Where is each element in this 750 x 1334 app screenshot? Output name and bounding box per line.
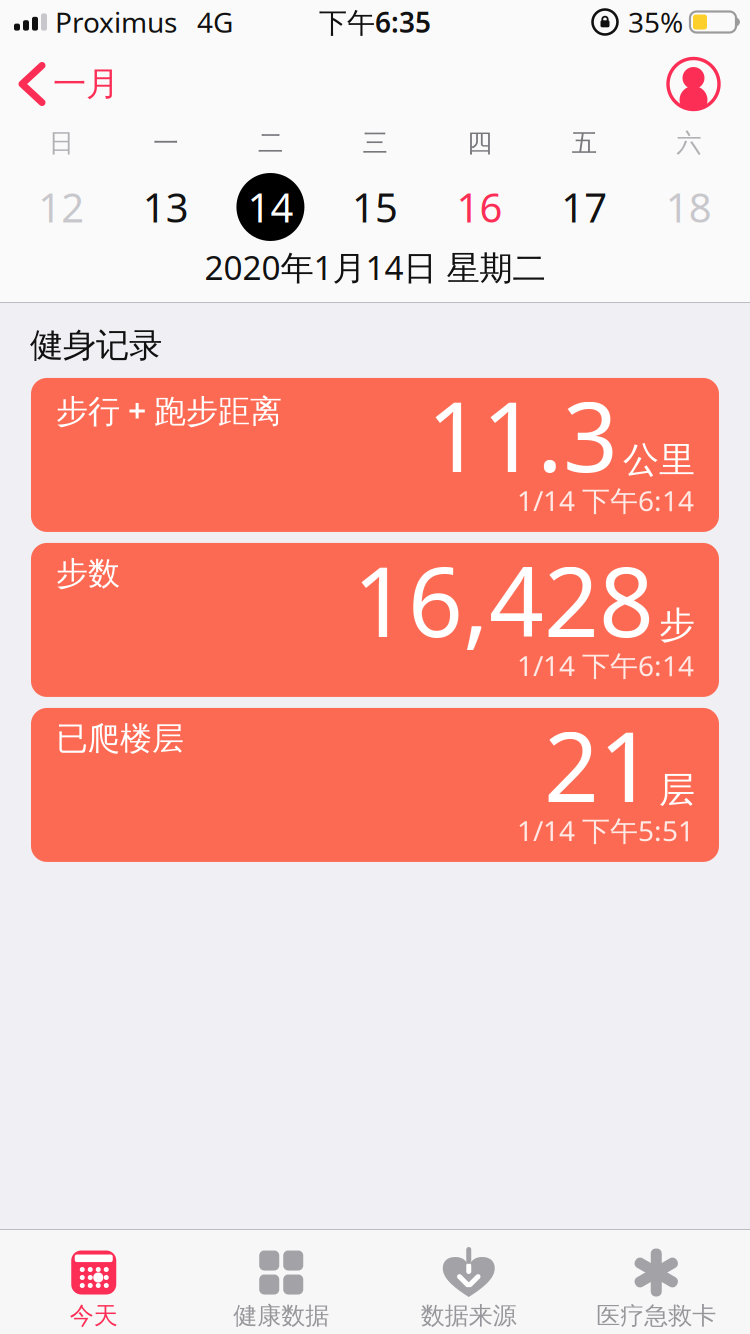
staticText: 14 [247,180,293,233]
staticText: 18 [666,180,712,233]
staticText: 35% [628,3,683,41]
staticText: Proximus [55,3,177,41]
staticText: 日 [49,127,74,158]
staticText: 1/14 下午6:14 [517,482,694,519]
button[interactable]: 18 [636,173,741,241]
button[interactable]: 步行 + 跑步距离 [31,378,719,532]
staticText: 步数 [56,554,120,593]
staticText: 三 [362,127,387,158]
staticText: 一 [153,127,178,158]
staticText: 16,428 [353,536,654,663]
staticText: 1/14 下午5:51 [517,812,694,849]
staticText: 今天 [70,1301,118,1330]
button[interactable]: 一月 [0,63,119,104]
staticText: 步行 + 跑步距离 [56,389,282,431]
staticText: 一月 [53,63,119,104]
button[interactable]: 健康数据 [187,1249,375,1330]
staticText: 2020年1月14日 星期二 [204,245,545,289]
staticText: 二 [258,127,283,158]
button[interactable]: 数据来源 [375,1249,562,1330]
staticText: 五 [572,127,597,158]
staticText: 健身记录 [30,325,162,366]
button[interactable]: 步数 [31,543,719,697]
button[interactable]: 已爬楼层 [31,708,719,862]
button[interactable]: 医疗急救卡 [562,1249,750,1330]
staticText: 层 [659,768,695,812]
staticText: 4G [197,3,233,41]
button[interactable]: 健康资料 [668,58,750,109]
staticText: 步 [659,603,695,647]
staticText: 下午6:35 [319,3,431,41]
button[interactable]: 14 [218,173,323,241]
staticText: 21 [544,701,654,828]
staticText: 医疗急救卡 [596,1301,716,1330]
staticText: 已爬楼层 [56,719,184,758]
staticText: 13 [143,180,189,233]
button[interactable]: 15 [323,173,427,241]
staticText: 12 [38,180,84,233]
staticText: 17 [561,180,607,233]
staticText: 11.3 [427,371,618,498]
staticText: 16 [457,180,503,233]
staticText: 数据来源 [421,1301,517,1330]
button[interactable]: 今天 [0,1249,187,1330]
staticText: 公里 [623,438,695,482]
button[interactable]: 12 [9,173,114,241]
staticText: 1/14 下午6:14 [517,647,694,684]
button[interactable]: 16 [427,173,532,241]
button[interactable]: 17 [532,173,636,241]
staticText: 健康数据 [233,1301,329,1330]
staticText: 四 [467,127,492,158]
button[interactable]: 13 [114,173,218,241]
staticText: 15 [352,180,398,233]
staticText: 六 [676,127,701,158]
